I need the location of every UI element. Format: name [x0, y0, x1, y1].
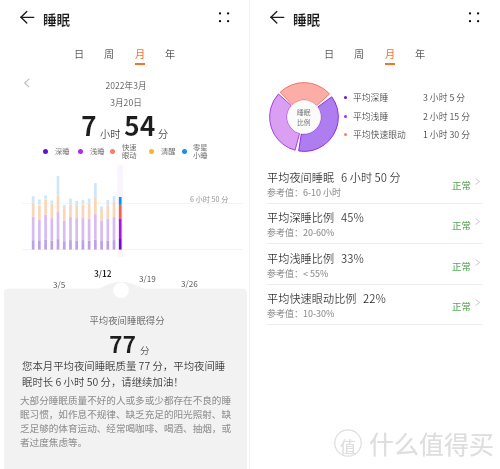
staticText: 日 [68, 46, 90, 61]
staticText: 您本月平均夜间睡眠质量 77 分，平均夜间睡眠时长 6 小时 50 分，请继续加… [22, 358, 231, 389]
staticText: 平均夜间睡眠 [267, 169, 335, 185]
staticText: 分 [158, 126, 169, 141]
staticText: 年 [409, 46, 431, 61]
staticText: 平均深睡比例 [267, 209, 335, 225]
staticText: 清醒 [161, 146, 176, 157]
staticText: 比例 [297, 117, 311, 127]
staticText: 月 [129, 46, 151, 61]
staticText: 54 [124, 105, 156, 143]
staticText: 小时 [100, 126, 121, 141]
button[interactable]: 周 [348, 44, 370, 68]
staticText: 周 [98, 46, 120, 61]
staticText: 正常 [452, 299, 471, 313]
staticText: 平均浅睡比例 [267, 250, 335, 266]
staticText: 3 小时 5 分 [423, 91, 466, 104]
staticText: 参考值：6-10 小时 [267, 186, 342, 199]
staticText: 分 [140, 343, 150, 357]
staticText: 3/12 [94, 267, 112, 279]
button[interactable]: 平均深睡比例 [250, 203, 500, 243]
staticText: 平均浅睡 [353, 110, 389, 123]
staticText: 正常 [452, 259, 471, 273]
staticText: 睡眠 [293, 9, 321, 29]
staticText: 小睡 [193, 150, 208, 161]
staticText: 22% [363, 290, 386, 306]
staticText: 平均快速眼动 [353, 128, 406, 141]
staticText: 33% [341, 250, 364, 266]
staticText: 周 [348, 46, 370, 61]
button[interactable]: 平均夜间睡眠 [250, 163, 500, 203]
staticText: 6 小时 50 分 [190, 194, 229, 204]
staticText: 平均夜间睡眠得分 [89, 313, 165, 327]
staticText: 日 [318, 46, 340, 61]
button[interactable]: More options [460, 3, 488, 31]
staticText: 深睡 [55, 146, 70, 157]
staticText: 平均快速眼动比例 [267, 290, 357, 306]
staticText: 眼动 [122, 150, 137, 161]
staticText: 睡眠 [43, 9, 71, 29]
button[interactable]: More options [210, 3, 238, 31]
button[interactable]: 周 [98, 44, 120, 68]
staticText: 正常 [452, 178, 471, 192]
button[interactable]: 日 [318, 44, 340, 68]
staticText: 正常 [452, 218, 471, 232]
staticText: 浅睡 [90, 146, 105, 157]
staticText: 参考值：< 55% [267, 267, 329, 280]
staticText: 6 小时 50 分 [341, 169, 401, 185]
staticText: 年 [159, 46, 181, 61]
staticText: 1 小时 30 分 [423, 128, 470, 141]
button[interactable]: 月 [129, 44, 151, 68]
staticText: 2022年3月 [50, 79, 202, 91]
staticText: 3/26 [181, 277, 198, 289]
staticText: 什么值得买 [369, 425, 495, 461]
button[interactable]: 年 [409, 44, 431, 68]
staticText: 45% [341, 209, 364, 225]
button[interactable]: Back [256, 2, 286, 32]
staticText: 2 小时 15 分 [423, 110, 470, 123]
staticText: 3/5 [53, 278, 66, 290]
button[interactable]: 年 [159, 44, 181, 68]
staticText: 7 [81, 105, 97, 143]
staticText: 平均深睡 [353, 91, 389, 104]
staticText: 快速 [122, 142, 137, 153]
staticText: 3月20日 [50, 96, 202, 108]
staticText: 参考值：20-60% [267, 226, 335, 239]
staticText: 大部分睡眠质量不好的人或多或少都存在不良的睡眠习惯，如作息不规律、缺乏充足的阳光… [20, 393, 233, 449]
button[interactable]: Back [6, 2, 36, 32]
button[interactable]: 月 [379, 44, 401, 68]
button[interactable]: 日 [68, 44, 90, 68]
staticText: 零星 [193, 142, 208, 153]
button[interactable]: 平均快速眼动比例 [250, 284, 500, 324]
button[interactable]: Previous period [18, 74, 36, 92]
staticText: 77 [109, 326, 137, 359]
staticText: 参考值：10-30% [267, 307, 335, 320]
staticText: 睡眠 [297, 107, 311, 117]
staticText: 值 [334, 434, 362, 457]
staticText: 月 [379, 46, 401, 61]
button[interactable]: 平均浅睡比例 [250, 244, 500, 284]
staticText: 3/19 [139, 272, 156, 284]
